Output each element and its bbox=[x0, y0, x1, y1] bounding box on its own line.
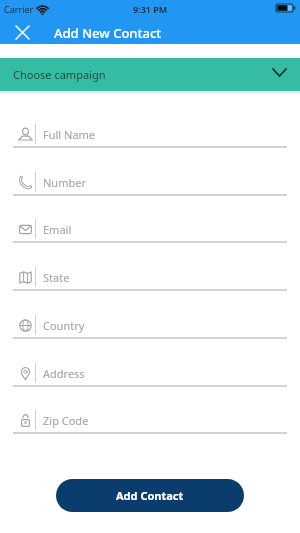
button[interactable]: Address bbox=[0, 340, 300, 387]
staticText: Full Name bbox=[43, 127, 96, 142]
button[interactable]: Email bbox=[0, 196, 300, 243]
button[interactable]: State bbox=[0, 244, 300, 291]
staticText: Choose campaign bbox=[13, 67, 106, 82]
staticText: Zip Code bbox=[43, 413, 89, 428]
staticText: Add New Contact bbox=[54, 24, 162, 42]
button[interactable]: Zip Code bbox=[0, 387, 300, 434]
staticText: Email bbox=[43, 222, 72, 237]
staticText: 9:31 PM bbox=[133, 3, 168, 15]
staticText: Country bbox=[43, 318, 85, 333]
staticText: State bbox=[43, 270, 70, 285]
button[interactable]: Choose campaign bbox=[0, 58, 300, 91]
staticText: Number bbox=[43, 175, 86, 190]
button[interactable]: Full Name bbox=[0, 101, 300, 148]
button[interactable]: Add Contact bbox=[56, 479, 244, 512]
staticText: Carrier bbox=[4, 3, 34, 15]
staticText: Add Contact bbox=[116, 488, 184, 503]
button[interactable]: Country bbox=[0, 292, 300, 339]
button[interactable] bbox=[9, 19, 35, 45]
staticText: Address bbox=[43, 366, 85, 381]
button[interactable]: Number bbox=[0, 149, 300, 196]
